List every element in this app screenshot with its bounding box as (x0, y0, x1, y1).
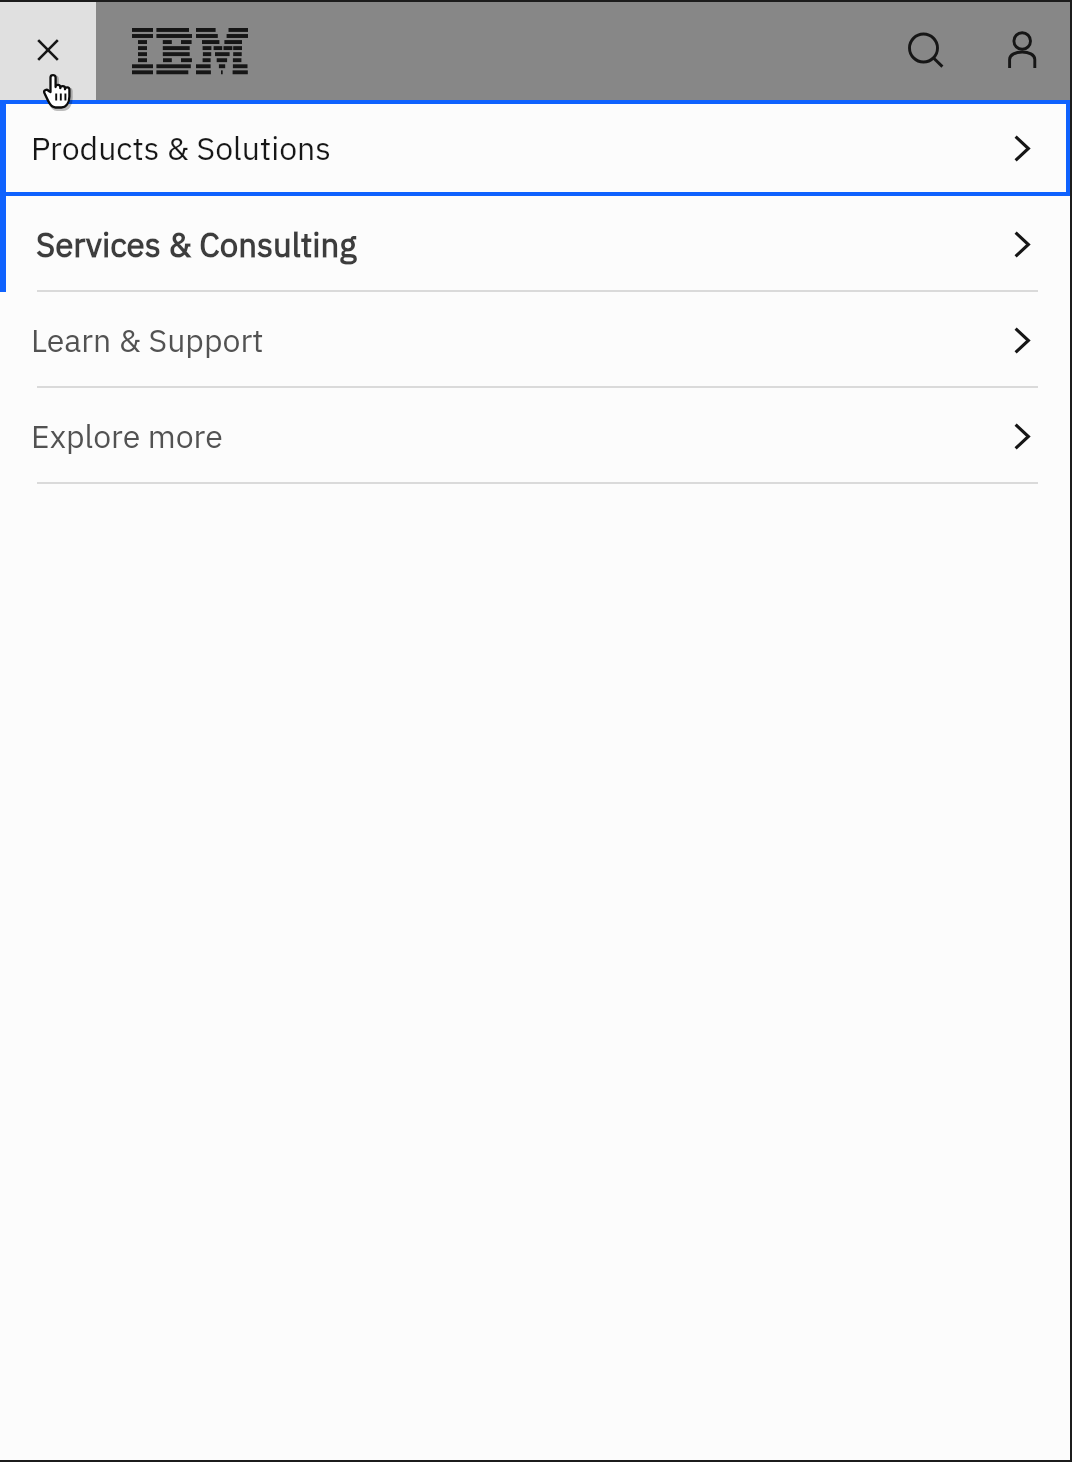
button[interactable]: IBM home (120, 0, 260, 100)
button[interactable]: Explore more (0, 388, 1070, 484)
button[interactable]: Close menu (0, 0, 96, 100)
button[interactable]: Search (880, 0, 972, 100)
button[interactable]: Products & Solutions (0, 100, 1070, 196)
button[interactable]: Learn & Support (0, 292, 1070, 388)
button[interactable]: Services & Consulting (0, 196, 1070, 292)
staticText: Services & Consulting (36, 223, 357, 266)
staticText: Explore more (31, 415, 223, 457)
staticText: Products & Solutions (31, 127, 331, 169)
staticText: Learn & Support (31, 319, 264, 361)
button[interactable]: User account (976, 0, 1068, 100)
